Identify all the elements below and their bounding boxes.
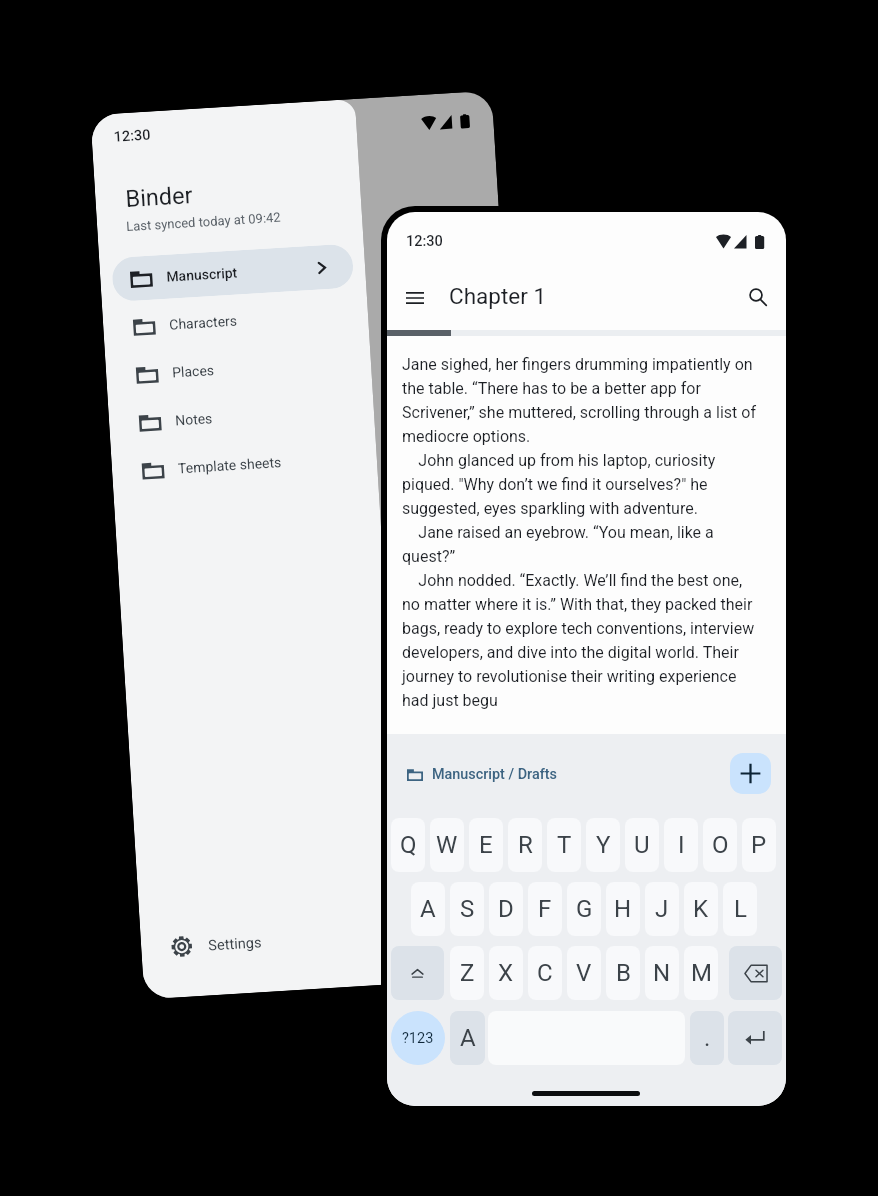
button[interactable]: U [625,818,659,872]
staticText: S [460,895,475,923]
staticText: L [734,895,747,923]
button[interactable]: K [684,882,718,936]
staticText: Characters [169,307,332,333]
staticText: Y [596,831,611,859]
button[interactable]: S [450,882,484,936]
staticText: U [634,831,650,859]
staticText: K [693,895,709,923]
staticText: A [460,1024,476,1052]
button[interactable]: Manuscript / Drafts [407,760,557,788]
button[interactable]: J [645,882,679,936]
button[interactable]: G [567,882,601,936]
staticText: A [420,895,436,923]
staticText: E [479,831,493,859]
staticText: X [498,959,514,987]
staticText: Chapter 1 [449,283,547,309]
button[interactable]: Q [391,818,425,872]
staticText: H [614,895,632,923]
button[interactable]: ?123 [391,1011,445,1065]
button[interactable]: P [742,818,776,872]
staticText: Binder [125,181,194,213]
button[interactable]: I [664,818,698,872]
button[interactable]: Search [736,275,780,319]
staticText: C [537,959,553,987]
button[interactable]: . [690,1011,724,1065]
button[interactable]: Y [586,818,620,872]
staticText: Q [400,831,417,859]
staticText: D [498,895,514,923]
staticText: T [557,831,572,859]
staticText: Manuscript [166,260,315,285]
staticText: 12:30 [406,233,443,250]
staticText: B [616,959,631,987]
staticText: F [538,895,552,923]
staticText: V [576,959,592,987]
button[interactable]: N [645,946,679,1000]
staticText: Last synced today at 09:42 [126,210,281,234]
button[interactable]: M [684,946,718,1000]
button[interactable]: H [606,882,640,936]
button[interactable]: B [606,946,640,1000]
staticText: P [751,831,767,859]
button[interactable]: Template sheets [123,435,366,494]
button[interactable]: C [528,946,562,1000]
staticText: J [655,895,669,923]
staticText: Z [460,959,475,987]
staticText: Notes [175,403,338,428]
button[interactable]: Manuscript [111,243,354,302]
staticText: Settings [208,933,263,953]
button[interactable]: T [547,818,581,872]
staticText: ?123 [402,1030,434,1047]
button[interactable]: D [489,882,523,936]
button[interactable]: O [703,818,737,872]
button[interactable]: Characters [114,291,357,350]
staticText: Places [172,355,335,380]
button[interactable]: Z [450,946,484,1000]
button[interactable]: Add item [730,753,771,794]
button[interactable]: W [430,818,464,872]
staticText: Jane sighed, her fingers drumming impati… [402,355,763,710]
staticText: R [518,831,533,859]
button[interactable]: F [528,882,562,936]
staticText: Template sheets [178,450,341,476]
staticText: W [436,831,458,859]
staticText: O [712,831,729,859]
button[interactable]: V [567,946,601,1000]
button[interactable]: Open navigation menu [393,276,437,320]
button[interactable]: L [723,882,757,936]
button[interactable]: E [469,818,503,872]
staticText: N [653,959,671,987]
button[interactable]: R [508,818,542,872]
staticText: 12:30 [113,126,151,146]
staticText: G [576,895,593,923]
button[interactable]: A [411,882,445,936]
staticText: M [691,959,712,987]
button[interactable]: Settings [152,911,395,970]
button[interactable]: A [450,1011,485,1065]
button[interactable]: Backspace [729,946,782,1000]
button[interactable]: Notes [120,387,363,446]
staticText: . [704,1024,711,1052]
button[interactable]: Enter [728,1011,782,1065]
button[interactable]: Shift [391,946,444,1000]
staticText: I [678,831,685,859]
button[interactable]: Places [117,339,360,398]
staticText: Manuscript / Drafts [432,766,557,783]
button[interactable]: X [489,946,523,1000]
